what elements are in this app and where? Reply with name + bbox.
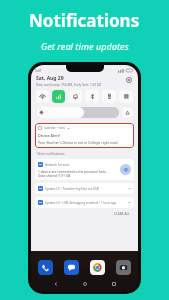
button[interactable]: Quick toggle 3 bbox=[85, 90, 99, 103]
staticText: System UI • Transferring files via USB bbox=[45, 187, 128, 191]
staticText: Data shared: 5.91 GB bbox=[38, 173, 71, 177]
button[interactable]: Back bbox=[51, 279, 60, 288]
button[interactable]: Quick toggle 4 bbox=[102, 90, 116, 103]
staticText: Your Brother's Device is not in College … bbox=[38, 140, 118, 145]
button[interactable]: Quick toggle 1 bbox=[52, 90, 65, 103]
staticText: Network Services bbox=[45, 163, 70, 167]
button[interactable]: System UI • USB debugging enabled • 1 ho… bbox=[35, 197, 134, 208]
button[interactable]: outrider • now bbox=[35, 123, 134, 148]
button[interactable]: Recents bbox=[109, 279, 118, 288]
button[interactable]: Chrome bbox=[90, 260, 105, 275]
button[interactable]: Settings bbox=[124, 75, 133, 84]
button[interactable]: Auto rotate bbox=[122, 107, 133, 118]
button[interactable]: Camera bbox=[116, 260, 131, 275]
button[interactable]: Quick toggle 2 bbox=[68, 90, 82, 103]
button[interactable]: Phone bbox=[38, 260, 53, 275]
button[interactable]: Messages bbox=[64, 260, 79, 275]
button[interactable]: CLEAR ALL bbox=[111, 210, 133, 218]
button[interactable]: Quick toggle 5 bbox=[119, 90, 133, 103]
button[interactable]: Brightness slider bbox=[36, 107, 119, 118]
staticText: Silent notifications bbox=[37, 152, 65, 156]
staticText: outrider • now bbox=[44, 126, 65, 130]
staticText: Sat, Aug 29 bbox=[36, 75, 64, 82]
button[interactable]: Network Services bbox=[35, 159, 134, 180]
staticText: System UI • USB debugging enabled • 1 ho… bbox=[45, 201, 128, 205]
button[interactable]: System UI • Transferring files via USB bbox=[35, 183, 134, 194]
staticText: Data used today: 756 MB, Daily limit: 1.… bbox=[36, 83, 102, 87]
button[interactable]: Hotspot bbox=[120, 164, 131, 175]
staticText: 9:41 bbox=[35, 68, 42, 73]
button[interactable]: Home bbox=[80, 279, 89, 288]
staticText: CLEAR ALL bbox=[114, 212, 130, 216]
button[interactable]: Quick toggle 0 bbox=[36, 90, 49, 103]
staticText: Get real time updates bbox=[41, 40, 129, 52]
staticText: Device Alert! bbox=[38, 133, 61, 138]
staticText: Notifications bbox=[29, 9, 140, 32]
staticText: 1 device are connected to the personal h… bbox=[38, 169, 109, 173]
